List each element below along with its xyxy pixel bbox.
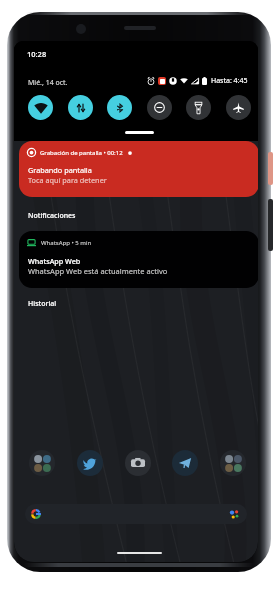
staticText: Grabación de pantalla • 00:12 [40,149,123,157]
staticText: Notificaciones [28,211,76,221]
staticText: Toca aquí para detener [28,175,107,185]
button[interactable]: Wi-Fi [28,95,53,120]
button[interactable]: Telegram [172,450,198,476]
button[interactable]: Datos móviles [68,95,93,120]
button[interactable]: Carpeta [29,450,55,476]
button[interactable]: Twitter [77,450,103,476]
staticText: WhatsApp • 5 min [41,239,92,247]
staticText: Grabando pantalla [28,165,92,175]
staticText: 10:28 [27,49,47,59]
staticText: WhatsApp Web está actualmente activo [28,266,168,276]
button[interactable]: Bluetooth [107,95,132,120]
button[interactable] [25,504,247,524]
staticText: Hasta: 4:45 [211,76,248,86]
button[interactable]: Grabación de pantalla • 00:12 [19,141,258,197]
button[interactable]: Cámara [125,450,151,476]
button[interactable]: Carpeta [220,450,246,476]
button[interactable]: Linterna [186,95,211,120]
staticText: Historial [28,299,57,309]
button[interactable]: Modo avión [226,95,251,120]
button[interactable]: WhatsApp • 5 min [19,231,258,288]
button[interactable]: No molestar [147,95,172,120]
staticText: Mié., 14 oct. [28,78,68,88]
staticText: WhatsApp Web [28,256,81,266]
